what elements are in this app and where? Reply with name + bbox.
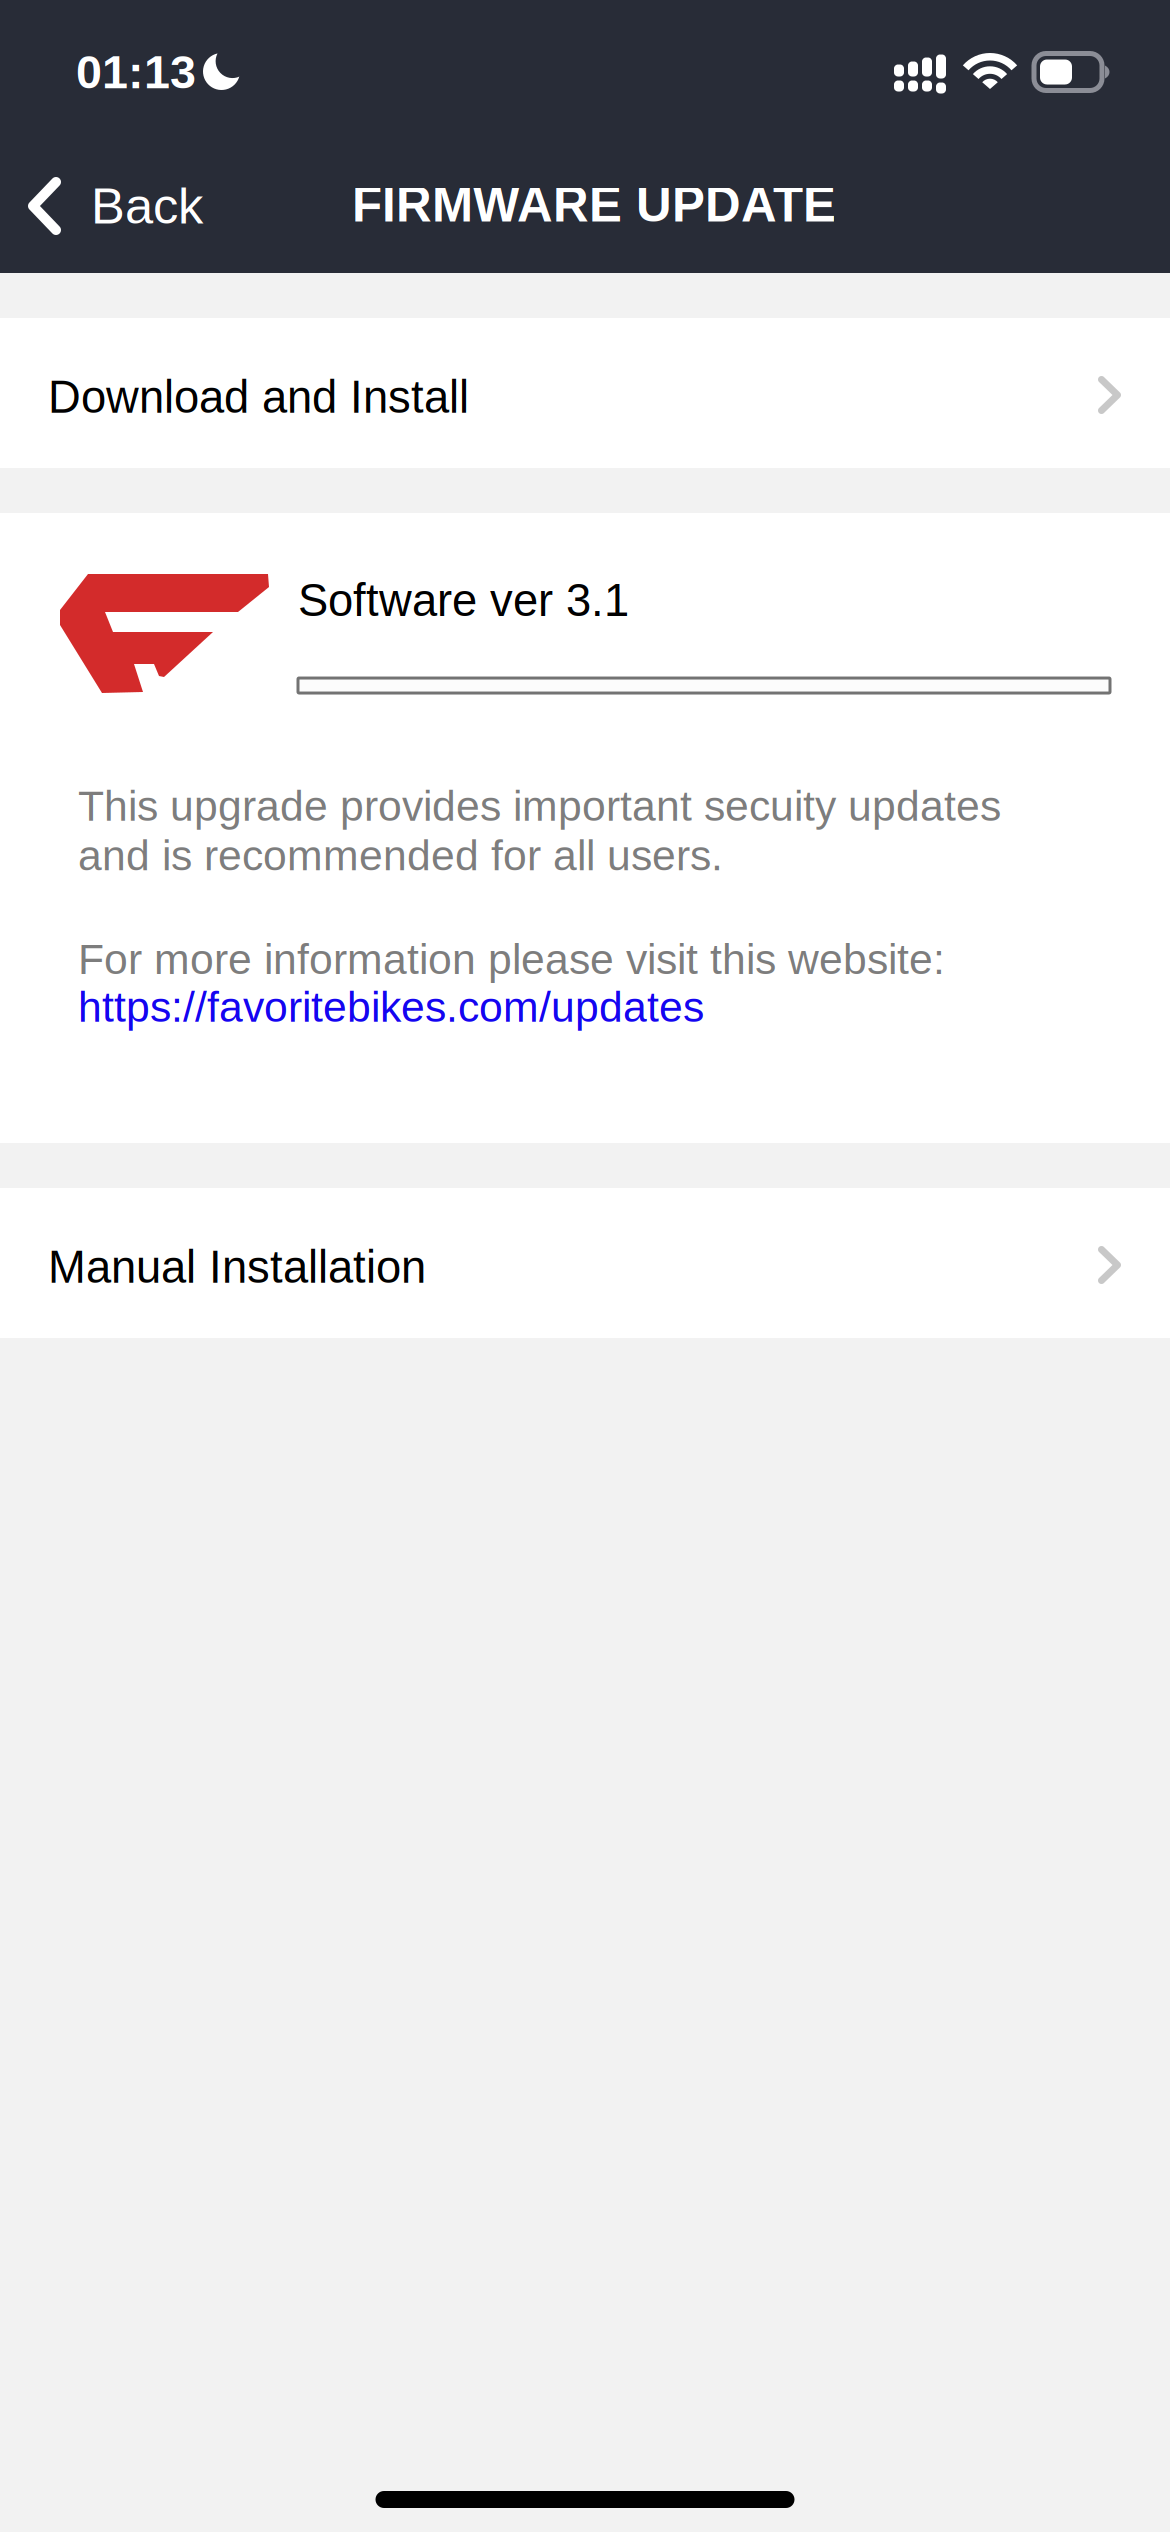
staticText: https://favoritebikes.com/updates [78, 983, 704, 1031]
button[interactable]: https://favoritebikes.com/updates [78, 983, 1008, 1031]
button[interactable]: Back [0, 120, 227, 273]
staticText: 01:13 [76, 46, 196, 98]
staticText: For more information please visit this w… [78, 935, 945, 983]
staticText: Back [91, 178, 203, 234]
staticText: Manual Installation [48, 1242, 426, 1292]
button[interactable]: Download and Install [0, 318, 1170, 468]
button[interactable]: Manual Installation [0, 1188, 1170, 1338]
staticText: This upgrade provides important secuity … [78, 782, 1001, 879]
staticText: Download and Install [48, 372, 469, 422]
staticText: FIRMWARE UPDATE [352, 177, 836, 232]
staticText: Software ver 3.1 [298, 575, 629, 626]
